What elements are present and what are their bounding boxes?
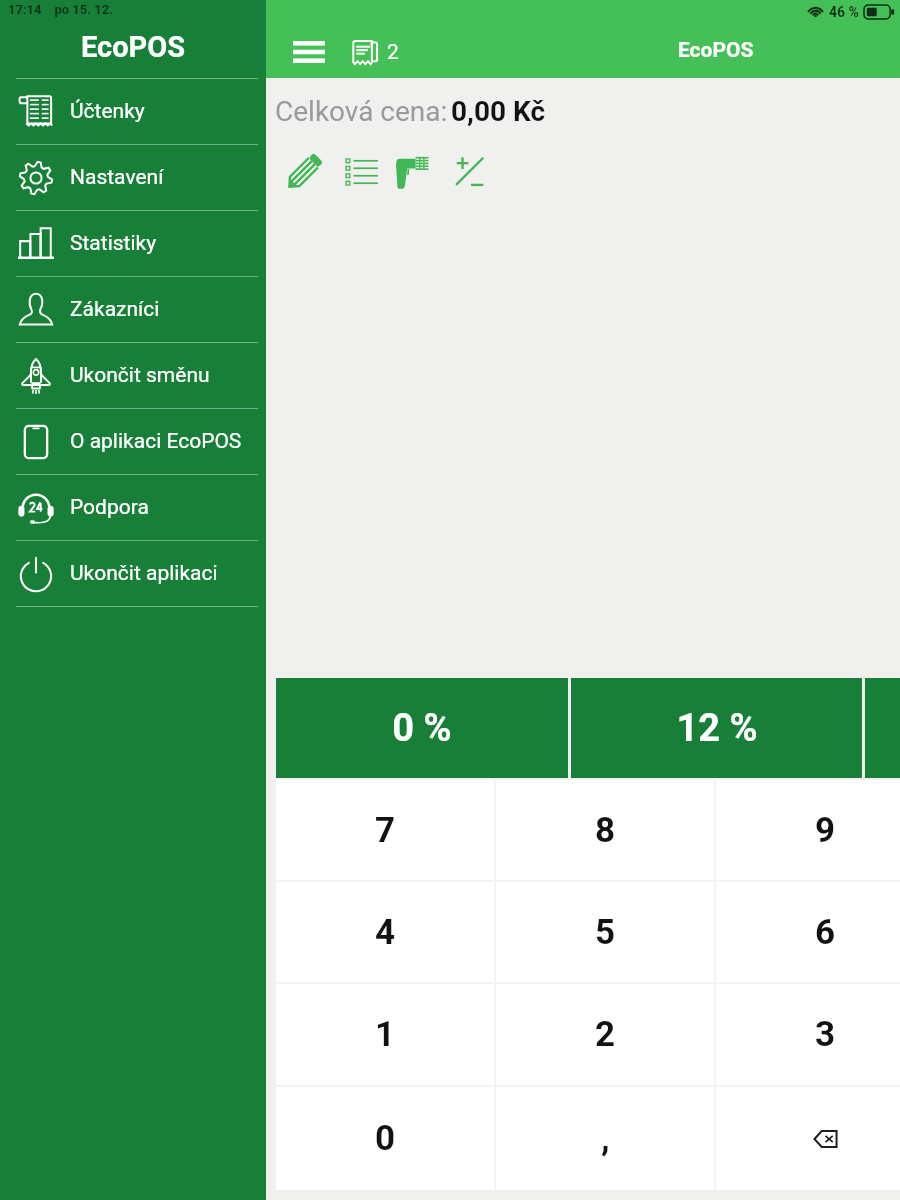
staticText: 3 [815,1014,836,1055]
staticText: , [601,1118,610,1159]
button[interactable]: 1 [276,984,494,1085]
button[interactable]: Plus minus [449,152,489,192]
staticText: 0 % [392,706,452,751]
button[interactable]: Statistiky [0,211,266,276]
staticText: EcoPOS [81,30,186,64]
staticText: 0 [375,1118,396,1159]
button[interactable]: 2 [496,984,714,1085]
staticText: 17:14 po 15. 12. [8,2,113,17]
staticText: 8 [595,810,616,851]
button[interactable]: Menu [287,30,331,74]
button[interactable]: Účtenky [0,79,266,144]
button[interactable]: Podpora [0,475,266,540]
button[interactable]: 0 [276,1087,494,1190]
staticText: Statistiky [70,231,157,256]
staticText: 7 [375,810,396,851]
staticText: Celková cena: [275,95,448,128]
button[interactable]: Open receipts (2) [348,34,402,71]
staticText: 6 [815,912,836,953]
button[interactable]: Nastavení [0,145,266,210]
staticText: 0,00 Kč [451,95,546,128]
button[interactable]: 9 [716,780,900,880]
staticText: Ukončit aplikaci [70,561,218,586]
button[interactable]: 5 [496,882,714,982]
button[interactable]: Add manual item [282,150,326,194]
button[interactable]: 6 [716,882,900,982]
button[interactable]: 4 [276,882,494,982]
staticText: Ukončit směnu [70,363,210,388]
staticText: 4 [375,912,396,953]
button[interactable]: Backspace [716,1087,900,1190]
staticText: 1 [375,1014,396,1055]
staticText: Účtenky [70,99,145,124]
button[interactable]: Ukončit směnu [0,343,266,408]
staticText: 46 % [829,4,859,20]
button[interactable]: 0 % [276,678,568,778]
button[interactable]: Item list [342,152,382,192]
button[interactable]: , [496,1087,714,1190]
button[interactable]: Zákazníci [0,277,266,342]
staticText: 5 [595,912,616,953]
button[interactable]: O aplikaci EcoPOS [0,409,266,474]
staticText: EcoPOS [678,38,754,63]
staticText: 2 [387,40,399,65]
staticText: 9 [815,810,836,851]
button[interactable]: 7 [276,780,494,880]
staticText: Zákazníci [70,297,160,322]
button[interactable]: Ukončit aplikaci [0,541,266,606]
button[interactable]: 8 [496,780,714,880]
staticText: O aplikaci EcoPOS [70,429,242,454]
button[interactable]: Barcode scanner [391,152,431,192]
staticText: 2 [595,1014,616,1055]
button[interactable]: 3 [716,984,900,1085]
staticText: 12 % [676,706,758,751]
staticText: Nastavení [70,165,164,190]
button[interactable]: 12 % [571,678,862,778]
staticText: Podpora [70,495,149,520]
